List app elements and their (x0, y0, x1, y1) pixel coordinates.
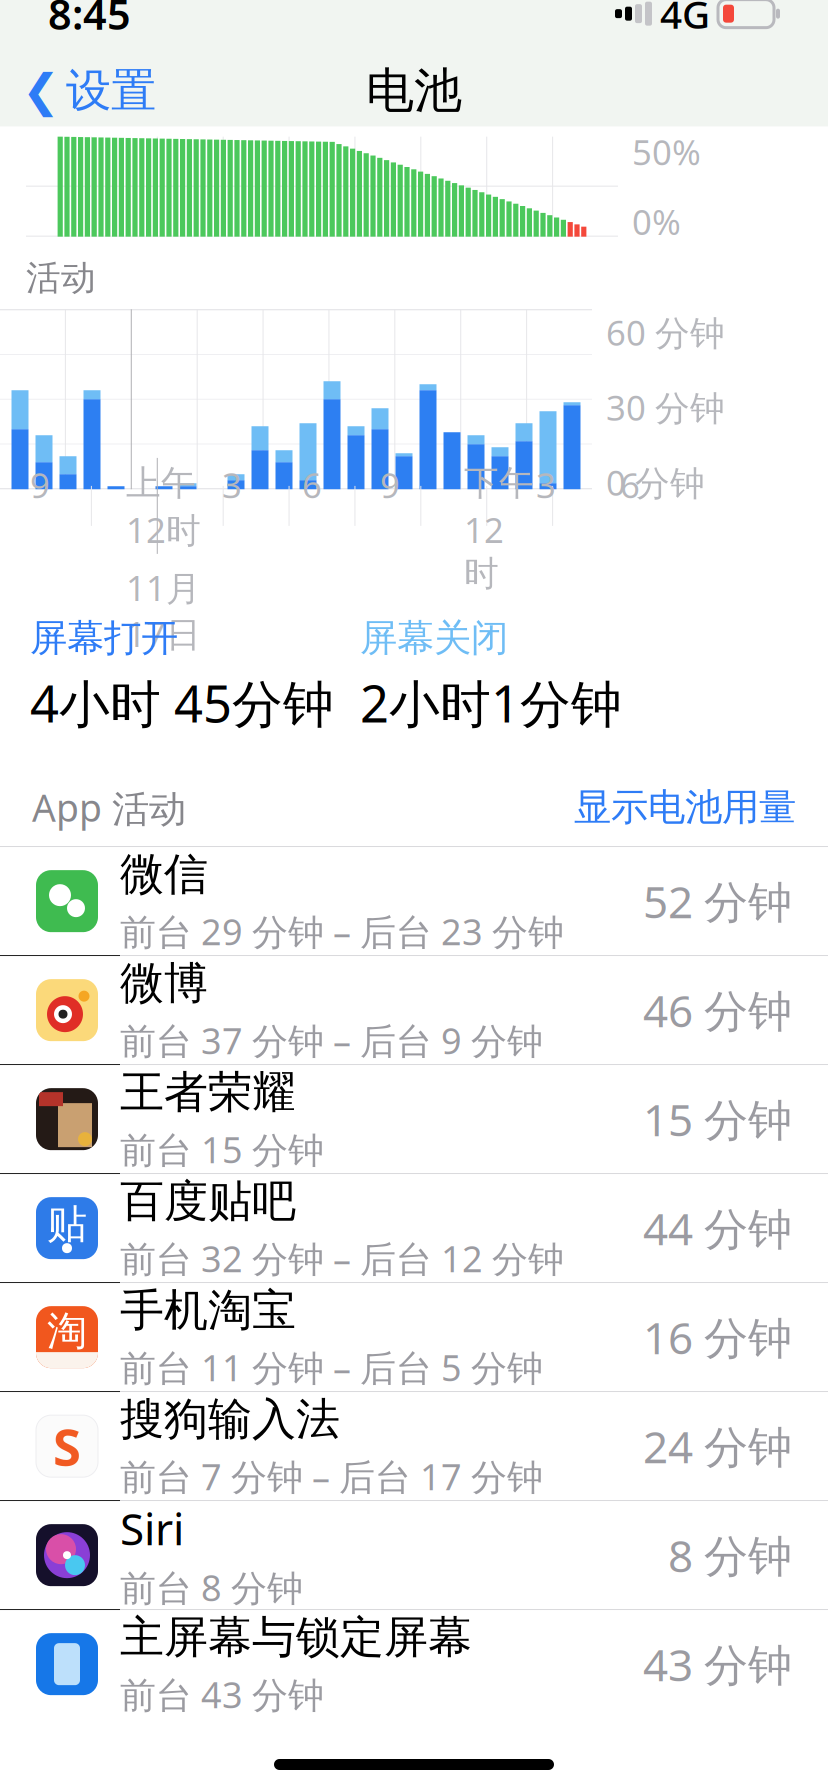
staticText: 屏幕打开 (30, 615, 178, 661)
staticText: ❮ (22, 65, 60, 116)
staticText: 8 分钟 (668, 1526, 792, 1584)
staticText: S (53, 1412, 81, 1480)
staticText: 12时 (126, 506, 201, 552)
button[interactable]: Siri (0, 1501, 828, 1610)
staticText: 淘 (47, 1307, 87, 1356)
staticText: 6 (620, 462, 640, 508)
staticText: 9 (30, 462, 50, 508)
staticText: 前台 11 分钟 – 后台 5 分钟 (120, 1343, 543, 1391)
staticText: 44 分钟 (643, 1199, 792, 1257)
staticText: 电池 (366, 61, 462, 120)
staticText: 0% (632, 199, 681, 245)
staticText: 下午 (464, 462, 534, 504)
staticText: 24 分钟 (643, 1417, 792, 1475)
staticText: 微博 (120, 956, 208, 1010)
staticText: App 活动 (32, 782, 186, 832)
staticText: 贴 (47, 1200, 87, 1249)
staticText: 前台 43 分钟 (120, 1670, 324, 1718)
staticText: 16 分钟 (643, 1308, 792, 1366)
button[interactable]: 主屏幕与锁定屏幕 (0, 1610, 828, 1718)
staticText: 30 分钟 (606, 384, 725, 430)
staticText: 搜狗输入法 (120, 1392, 340, 1446)
staticText: 前台 37 分钟 – 后台 9 分钟 (120, 1016, 543, 1064)
staticText: 46 分钟 (643, 981, 792, 1039)
staticText: 活动 (26, 257, 96, 299)
staticText: 8:45 (48, 0, 131, 41)
staticText: 52 分钟 (643, 872, 792, 930)
staticText: 百度贴吧 (120, 1174, 296, 1228)
staticText: 6 (302, 462, 322, 508)
staticText: 主屏幕与锁定屏幕 (120, 1610, 472, 1664)
staticText: 前台 15 分钟 (120, 1125, 324, 1173)
staticText: 60 分钟 (606, 309, 725, 355)
button[interactable]: 显示电池用量 (574, 784, 796, 830)
staticText: 手机淘宝 (120, 1283, 296, 1337)
button[interactable]: S (0, 1392, 828, 1501)
staticText: 11月17日 (126, 564, 201, 657)
staticText: 2小时1分钟 (360, 669, 622, 736)
staticText: 9 (380, 462, 400, 508)
button[interactable]: 微博 (0, 956, 828, 1065)
button[interactable]: 贴 (0, 1174, 828, 1283)
staticText: 设置 (66, 63, 156, 118)
staticText: 显示电池用量 (574, 784, 796, 830)
staticText: 前台 32 分钟 – 后台 12 分钟 (120, 1234, 564, 1282)
staticText: 12时 (464, 506, 504, 595)
button[interactable]: 王者荣耀 (0, 1065, 828, 1174)
staticText: 屏幕关闭 (360, 615, 508, 661)
staticText: 15 分钟 (643, 1090, 792, 1148)
staticText: 3 (536, 462, 556, 508)
button[interactable]: ❮ (0, 55, 156, 126)
staticText: 43 分钟 (643, 1635, 792, 1693)
staticText: 王者荣耀 (120, 1065, 296, 1119)
staticText: 前台 7 分钟 – 后台 17 分钟 (120, 1452, 543, 1500)
staticText: 前台 29 分钟 – 后台 23 分钟 (120, 907, 564, 955)
staticText: 50% (632, 129, 701, 175)
staticText: Siri (120, 1499, 184, 1557)
staticText: 微信 (120, 847, 208, 901)
button[interactable]: 淘 (0, 1283, 828, 1392)
staticText: 3 (222, 462, 242, 508)
button[interactable]: 微信 (0, 847, 828, 956)
staticText: 0 分钟 (606, 459, 705, 505)
staticText: 4小时 45分钟 (30, 669, 334, 736)
staticText: 前台 8 分钟 (120, 1563, 303, 1611)
staticText: 上午 (126, 462, 196, 504)
staticText: 4G (660, 0, 710, 39)
